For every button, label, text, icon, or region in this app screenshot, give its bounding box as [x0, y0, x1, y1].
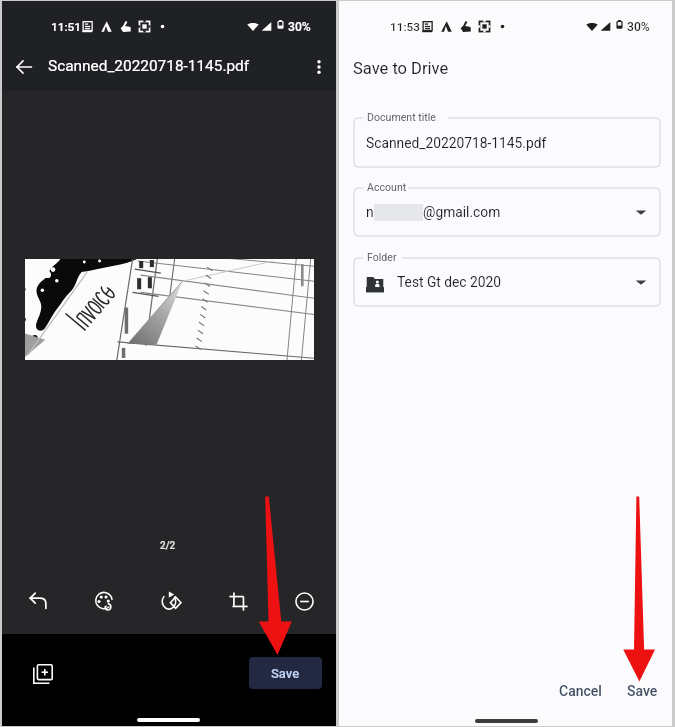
button[interactable]: Add page: [23, 654, 62, 693]
button[interactable]: Crop: [219, 582, 257, 620]
button[interactable]: Document title: [354, 118, 660, 167]
staticText: Document title: [367, 111, 436, 123]
staticText: 30%: [627, 20, 650, 34]
button[interactable]: Delete page: [285, 582, 323, 620]
staticText: Account: [367, 181, 407, 193]
button[interactable]: Cancel: [547, 678, 614, 704]
staticText: Test Gt dec 2020: [397, 274, 502, 290]
button[interactable]: Undo: [18, 582, 56, 620]
staticText: Save: [271, 666, 300, 681]
button[interactable]: Account: [354, 188, 660, 236]
staticText: 30%: [288, 20, 311, 34]
staticText: Cancel: [559, 683, 602, 699]
button[interactable]: Filters: [85, 582, 123, 620]
button[interactable]: Rotate: [152, 582, 190, 620]
staticText: Scanned_20220718-1145.pdf: [366, 135, 547, 151]
button[interactable]: Back: [10, 53, 38, 81]
staticText: Save to Drive: [353, 59, 449, 78]
staticText: Folder: [367, 251, 397, 263]
button[interactable]: Folder: [354, 258, 660, 306]
button[interactable]: Save: [249, 657, 322, 689]
staticText: n: [366, 204, 374, 220]
staticText: Save: [627, 683, 658, 699]
staticText: 11:51: [51, 20, 81, 34]
staticText: 11:53: [390, 20, 420, 34]
button[interactable]: More options: [305, 53, 333, 81]
staticText: @gmail.com: [423, 204, 501, 220]
button[interactable]: Save: [615, 678, 670, 704]
staticText: 2/2: [160, 540, 176, 552]
staticText: Scanned_20220718-1145.pdf: [48, 57, 250, 75]
